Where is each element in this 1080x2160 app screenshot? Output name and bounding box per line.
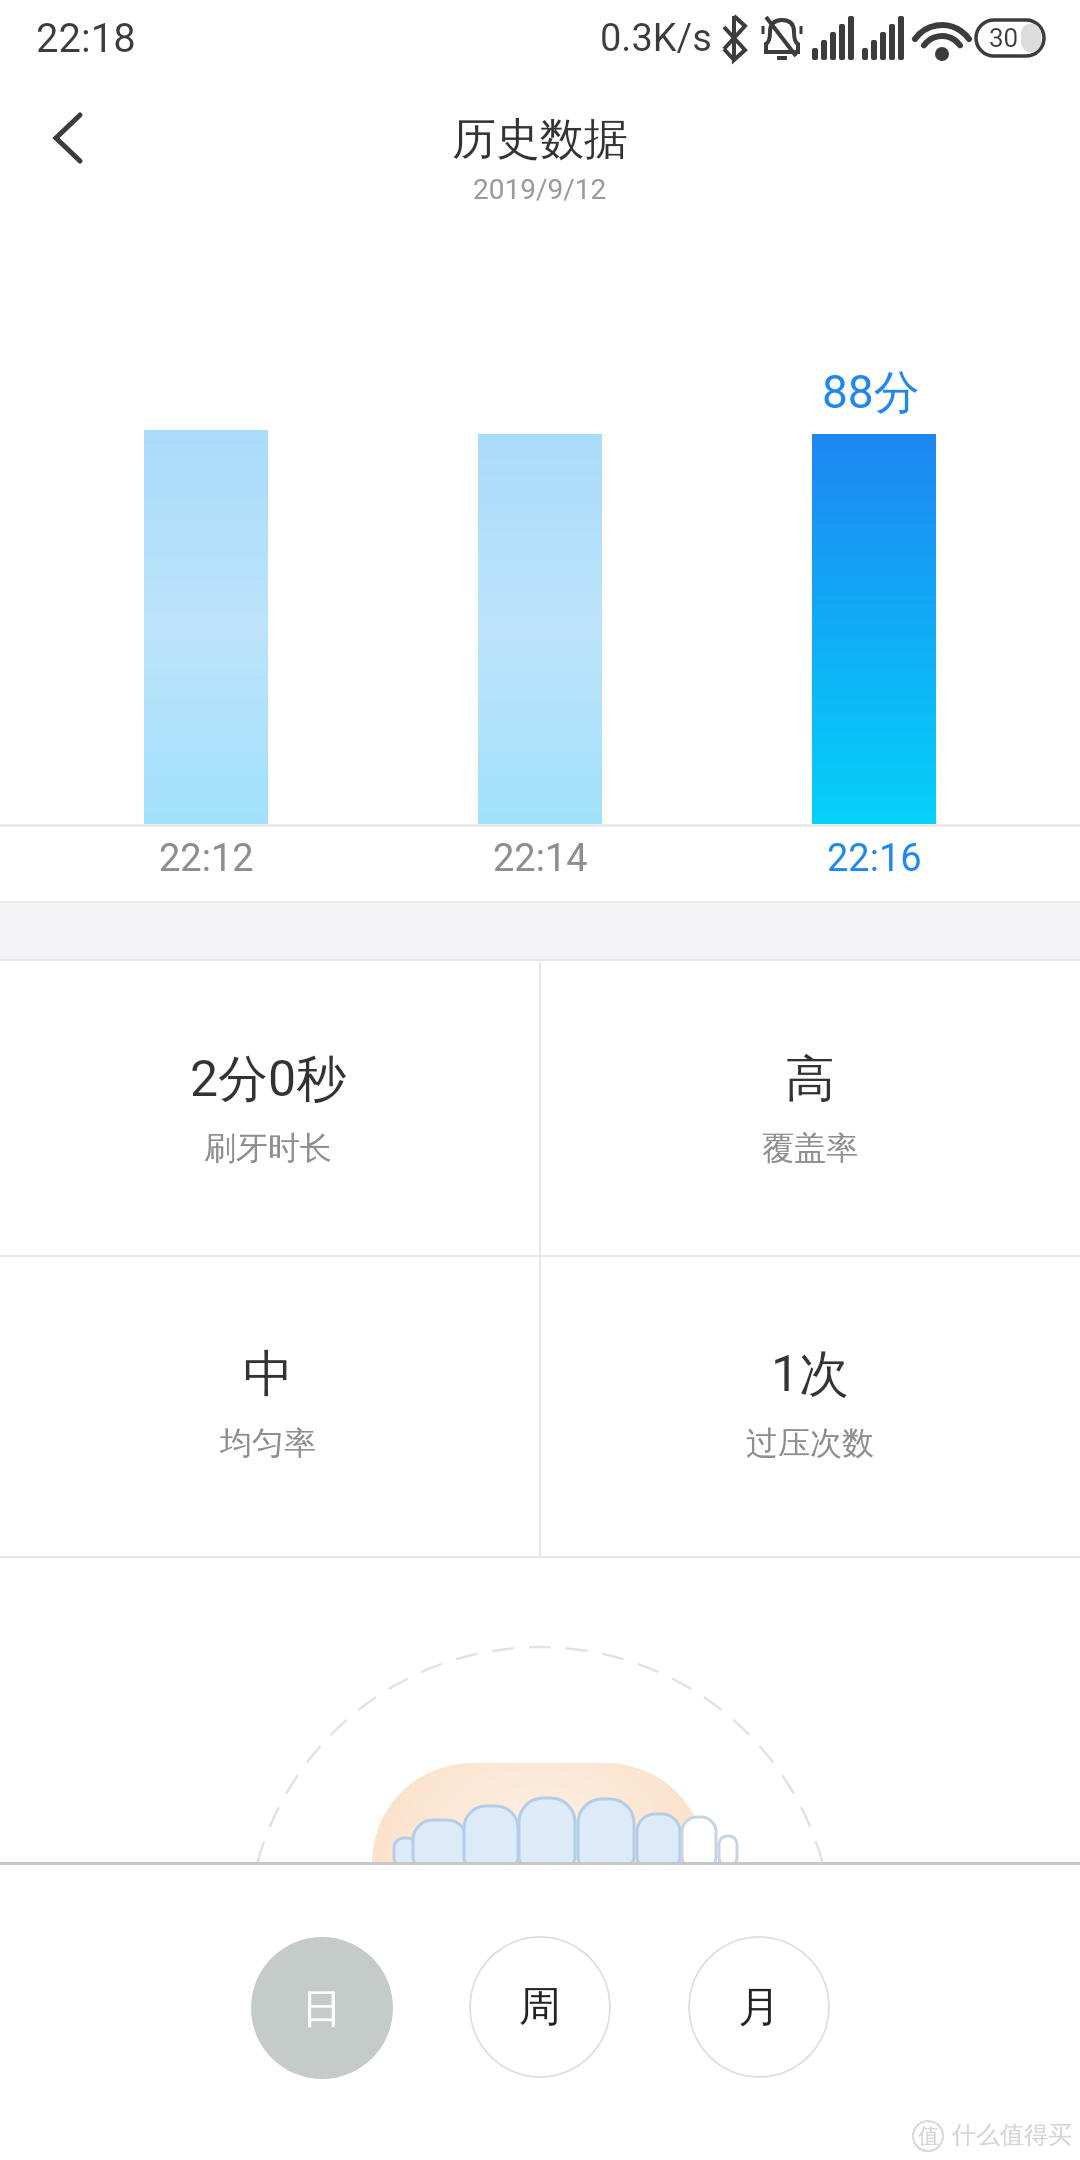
staticText: 刷牙时长 [204,1128,332,1168]
button[interactable] [541,962,1080,1255]
staticText: 月 [738,1981,780,2034]
button[interactable]: 周 [469,1936,611,2078]
staticText: 30 [989,23,1019,53]
staticText: 88分 [822,364,920,422]
staticText: 什么值得买 [952,2120,1072,2150]
staticText: 22:16 [827,836,922,881]
staticText: 22:14 [493,836,588,881]
staticText: 均匀率 [220,1423,316,1463]
button[interactable]: 日 [251,1937,393,2079]
staticText: 2019/9/12 [473,173,607,206]
staticText: 22:12 [159,836,254,881]
button[interactable] [30,105,100,175]
staticText: 22:18 [36,15,136,62]
button[interactable] [541,1257,1080,1556]
staticText: 过压次数 [746,1423,874,1463]
staticText: 2分0秒 [190,1048,347,1111]
button[interactable] [0,1257,539,1556]
staticText: 覆盖率 [762,1128,858,1168]
staticText: 日 [302,1983,342,2033]
staticText: 值 [918,2123,939,2149]
staticText: 中 [243,1343,293,1406]
staticText: 历史数据 [452,112,628,167]
button[interactable]: 月 [688,1936,830,2078]
staticText: 周 [519,1981,561,2034]
staticText: 高 [785,1048,835,1111]
staticText: 1次 [771,1343,850,1406]
button[interactable] [0,962,539,1255]
staticText: 0.3K/s [600,16,712,61]
